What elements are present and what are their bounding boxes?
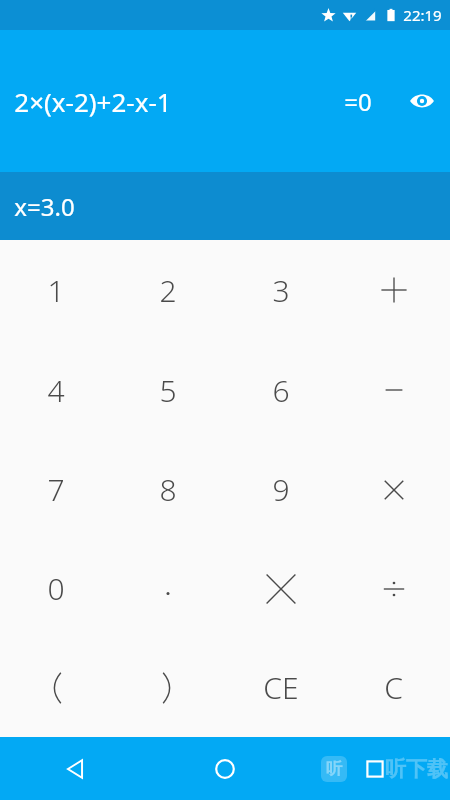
button[interactable]: 0 [0, 539, 112, 638]
staticText: 8 [159, 469, 177, 510]
staticText: x=3.0 [14, 190, 75, 223]
button[interactable]: 5 [112, 340, 224, 440]
button[interactable] [337, 539, 450, 638]
staticText: 1 [47, 270, 65, 311]
button[interactable]: 8 [112, 440, 224, 539]
button[interactable] [112, 638, 224, 737]
button[interactable]: 2 [112, 240, 224, 340]
staticText: =0 [344, 85, 372, 118]
button[interactable]: 9 [224, 440, 337, 539]
button[interactable]: CE [224, 638, 337, 737]
button[interactable]: Toggle answer visibility [400, 79, 444, 123]
staticText: 22:19 [403, 5, 442, 25]
staticText: 听下载 [385, 756, 448, 782]
button[interactable] [337, 340, 450, 440]
button[interactable] [337, 440, 450, 539]
staticText: CE [263, 667, 299, 708]
button[interactable]: C [337, 638, 450, 737]
staticText: 3 [272, 270, 290, 311]
staticText: 4 [47, 370, 65, 411]
button[interactable] [337, 240, 450, 340]
button[interactable]: 6 [224, 340, 337, 440]
staticText: 5 [159, 370, 177, 411]
button[interactable]: Back [0, 737, 150, 800]
button[interactable] [0, 638, 112, 737]
staticText: 0 [47, 568, 65, 609]
button[interactable]: 4 [0, 340, 112, 440]
staticText: C [384, 667, 403, 708]
button[interactable]: 7 [0, 440, 112, 539]
button[interactable] [224, 539, 337, 638]
button[interactable]: Home [150, 737, 300, 800]
staticText: 2×(x-2)+2-x-1 [14, 84, 172, 119]
staticText: 9 [272, 469, 290, 510]
button[interactable]: Recent apps [300, 737, 450, 800]
staticText: 2 [159, 270, 177, 311]
button[interactable] [112, 539, 224, 638]
button[interactable]: 3 [224, 240, 337, 340]
staticText: 听 [326, 759, 342, 779]
staticText: 6 [272, 370, 290, 411]
staticText: 7 [47, 469, 65, 510]
button[interactable]: 1 [0, 240, 112, 340]
